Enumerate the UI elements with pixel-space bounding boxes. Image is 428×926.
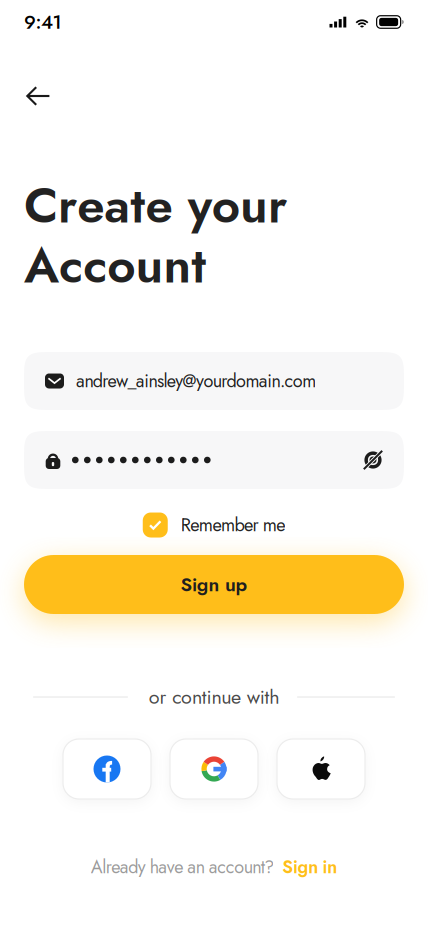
staticText: or continue with xyxy=(149,683,279,711)
button[interactable]: Show password xyxy=(363,450,383,470)
button[interactable]: Continue with Facebook xyxy=(63,739,151,799)
button[interactable]: Sign up xyxy=(24,555,404,614)
staticText: Remember me xyxy=(181,512,285,538)
staticText: andrew_ainsley@yourdomain.com xyxy=(76,368,316,394)
staticText: Create your xyxy=(24,170,287,241)
staticText: Sign in xyxy=(282,854,337,880)
button[interactable]: Remember me xyxy=(143,512,285,538)
staticText: Sign up xyxy=(180,570,248,598)
staticText: Already have an account? xyxy=(91,854,274,880)
staticText: Account xyxy=(24,230,207,301)
button[interactable]: Continue with Apple xyxy=(277,739,365,799)
button[interactable]: Back xyxy=(0,44,68,120)
button[interactable]: Already have an account? xyxy=(0,853,428,881)
button[interactable]: Continue with Google xyxy=(170,739,258,799)
staticText: 9:41 xyxy=(24,8,61,36)
